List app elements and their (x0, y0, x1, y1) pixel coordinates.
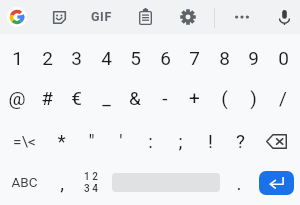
staticText: =\< (13, 133, 36, 151)
button[interactable]: 2 (32, 37, 62, 78)
button[interactable]: * (46, 120, 76, 161)
staticText: 7 (189, 47, 200, 69)
button[interactable]: Enter (259, 171, 294, 195)
button[interactable]: Emoji sticker (41, 1, 77, 33)
button[interactable]: 8 (209, 37, 239, 78)
staticText: 5 (130, 47, 141, 69)
staticText: . (236, 172, 242, 194)
staticText: 4 (101, 47, 112, 69)
staticText: ; (178, 130, 183, 152)
button[interactable]: @ (2, 77, 32, 118)
staticText: 0 (278, 47, 289, 69)
button[interactable]: 7 (179, 37, 209, 78)
button[interactable]: : (135, 120, 165, 161)
staticText: 6 (160, 47, 171, 69)
staticText: 9 (248, 47, 259, 69)
button[interactable]: 0 (268, 37, 298, 78)
staticText: * (57, 130, 66, 152)
button[interactable]: ABC (2, 161, 46, 202)
staticText: € (71, 87, 82, 109)
staticText: @ (8, 87, 26, 109)
button[interactable]: Backspace (254, 121, 299, 162)
staticText: " (88, 130, 95, 152)
staticText: : (148, 130, 153, 152)
staticText: - (162, 87, 168, 109)
button[interactable]: . (224, 162, 254, 203)
button[interactable]: / (268, 77, 298, 118)
staticText: 3 (71, 47, 82, 69)
button[interactable]: Number pad (76, 162, 106, 203)
button[interactable]: ! (195, 120, 225, 161)
staticText: ABC (11, 174, 38, 190)
button[interactable]: 6 (150, 37, 180, 78)
staticText: 1 (12, 47, 23, 69)
button[interactable]: Clipboard (127, 1, 163, 33)
button[interactable]: " (76, 120, 106, 161)
button[interactable]: ' (106, 120, 136, 161)
button[interactable]: 3 (61, 37, 91, 78)
button[interactable]: # (32, 77, 62, 118)
staticText: 8 (219, 47, 230, 69)
staticText: GIF (91, 9, 112, 24)
button[interactable]: _ (91, 77, 121, 118)
button[interactable]: Settings (170, 1, 206, 33)
button[interactable]: , (47, 162, 76, 203)
staticText: # (41, 87, 53, 109)
staticText: 3 4 (84, 183, 98, 195)
staticText: ' (119, 130, 123, 152)
staticText: 1 2 (84, 171, 98, 183)
button[interactable]: & (120, 77, 150, 118)
staticText: & (129, 87, 141, 109)
button[interactable]: ( (209, 77, 239, 118)
button[interactable]: =\< (2, 121, 46, 162)
button[interactable]: 5 (120, 37, 150, 78)
staticText: _ (102, 87, 111, 109)
staticText: / (279, 87, 287, 109)
staticText: ) (250, 87, 257, 109)
button[interactable]: 9 (238, 37, 268, 78)
button[interactable]: More options (224, 1, 260, 33)
button[interactable]: € (61, 77, 91, 118)
button[interactable]: ? (225, 120, 255, 161)
button[interactable]: - (150, 77, 180, 118)
staticText: 2 (42, 47, 53, 69)
staticText: ? (236, 130, 245, 152)
button[interactable]: GIF (83, 0, 119, 32)
button[interactable]: + (179, 77, 209, 118)
button[interactable]: ; (165, 120, 195, 161)
staticText: , (60, 172, 64, 194)
button[interactable]: Voice input (268, 1, 300, 33)
button[interactable]: ) (238, 77, 268, 118)
staticText: + (189, 87, 200, 109)
staticText: ! (208, 130, 213, 152)
staticText: ( (221, 87, 228, 109)
button[interactable]: 4 (91, 37, 121, 78)
button[interactable]: 1 (2, 37, 32, 78)
button[interactable]: Google (0, 1, 34, 33)
